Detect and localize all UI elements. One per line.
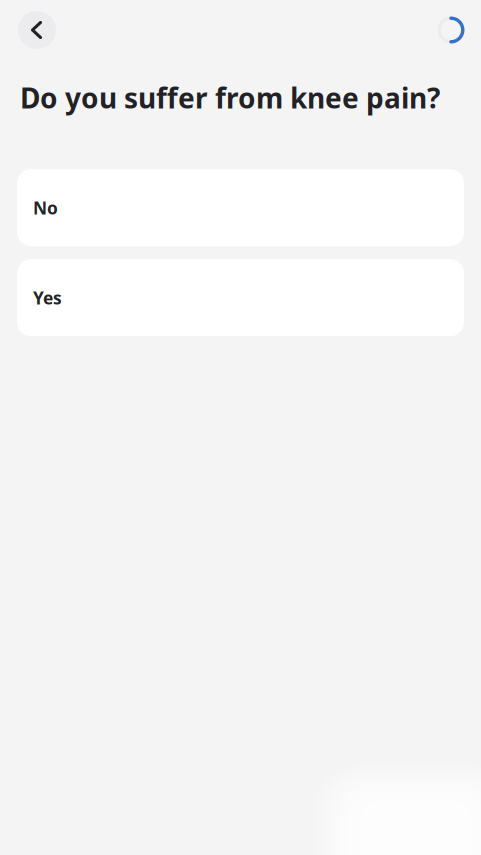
button[interactable]: No: [17, 169, 464, 246]
staticText: Do you suffer from knee pain?: [20, 79, 440, 116]
staticText: Yes: [33, 286, 62, 309]
button[interactable]: Back: [18, 11, 56, 49]
button[interactable]: Yes: [17, 259, 464, 336]
staticText: No: [33, 196, 58, 219]
